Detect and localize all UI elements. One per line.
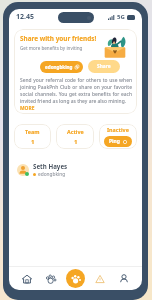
button[interactable]: Inactive <box>99 124 137 149</box>
button[interactable]: Active <box>56 124 94 149</box>
staticText: 1 <box>74 138 78 146</box>
button[interactable]: Profile <box>115 270 133 288</box>
staticText: Get more benefits by inviting <box>20 45 83 51</box>
staticText: 1 <box>31 138 35 146</box>
button[interactable]: Home <box>18 270 36 288</box>
button[interactable]: Pets <box>42 270 60 288</box>
button[interactable]: Ping <box>104 136 132 147</box>
staticText: Active <box>67 128 84 135</box>
button[interactable]: Add <box>66 269 85 288</box>
staticText: 12.45 <box>16 12 34 22</box>
staticText: Send your referral code for others to us… <box>20 77 132 105</box>
button[interactable]: Share <box>88 60 120 73</box>
staticText: edongbking <box>45 64 73 70</box>
button[interactable]: Team <box>14 124 51 149</box>
staticText: 5G <box>117 13 125 21</box>
button[interactable]: Activity <box>91 270 109 288</box>
staticText: Share with your friends! <box>20 34 97 43</box>
staticText: Team <box>25 128 40 135</box>
staticText: Share <box>97 63 111 70</box>
staticText: MORE <box>20 105 35 111</box>
staticText: edongbking <box>38 171 66 178</box>
staticText: Seth Hayes <box>33 162 68 170</box>
staticText: Inactive <box>107 126 129 133</box>
button[interactable]: Seth Hayes <box>14 160 137 180</box>
button[interactable]: edongbking <box>40 61 83 73</box>
staticText: Ping <box>109 138 121 145</box>
